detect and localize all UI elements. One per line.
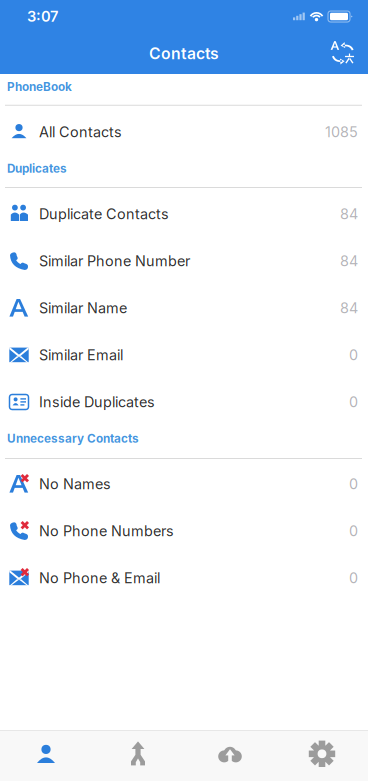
staticText: 0 <box>349 475 358 493</box>
staticText: Duplicate Contacts <box>39 205 169 223</box>
button[interactable]: Inside Duplicates <box>0 378 368 425</box>
staticText: 1085 <box>325 123 358 141</box>
staticText: Similar Phone Number <box>39 252 190 270</box>
staticText: Duplicates <box>7 161 67 176</box>
staticText: Similar Email <box>39 346 123 364</box>
button[interactable]: All Contacts <box>0 108 368 155</box>
button[interactable]: No Phone Numbers <box>0 507 368 554</box>
staticText: 84 <box>340 252 358 270</box>
button[interactable]: Translate names <box>328 38 358 68</box>
button[interactable]: No Names <box>0 460 368 507</box>
button[interactable]: Settings <box>276 731 368 777</box>
button[interactable]: Similar Phone Number <box>0 237 368 284</box>
staticText: Inside Duplicates <box>39 393 155 411</box>
staticText: Unnecessary Contacts <box>7 431 139 446</box>
button[interactable]: Duplicate Contacts <box>0 190 368 237</box>
button[interactable]: No Phone & Email <box>0 554 368 601</box>
staticText: Contacts <box>149 44 219 63</box>
button[interactable]: Similar Email <box>0 331 368 378</box>
button[interactable]: Similar Name <box>0 284 368 331</box>
staticText: PhoneBook <box>7 80 72 94</box>
button[interactable]: Contacts <box>0 731 92 777</box>
staticText: No Phone & Email <box>39 569 160 587</box>
button[interactable]: Backup <box>184 731 276 777</box>
button[interactable]: Merge <box>92 731 184 777</box>
staticText: 84 <box>340 205 358 223</box>
staticText: 0 <box>349 346 358 364</box>
staticText: No Phone Numbers <box>39 522 174 540</box>
staticText: No Names <box>39 475 111 493</box>
staticText: Similar Name <box>39 299 127 317</box>
staticText: 0 <box>349 569 358 587</box>
staticText: 0 <box>349 522 358 540</box>
staticText: 0 <box>349 393 358 411</box>
staticText: 3:07 <box>27 8 58 25</box>
staticText: 84 <box>340 299 358 317</box>
staticText: All Contacts <box>39 123 122 141</box>
